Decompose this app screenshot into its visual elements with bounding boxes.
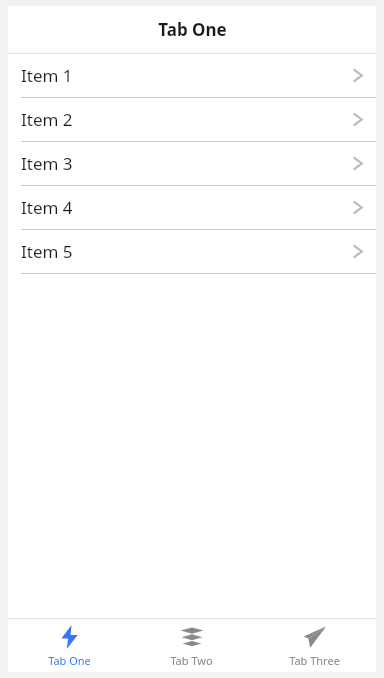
staticText: Item 1 [21, 64, 73, 87]
staticText: Item 2 [21, 108, 73, 131]
button[interactable]: Item 1 [8, 54, 376, 98]
staticText: Item 3 [21, 152, 73, 175]
button[interactable]: Tab Three [253, 619, 376, 672]
button[interactable]: Item 2 [8, 98, 376, 142]
staticText: Tab One [48, 653, 91, 668]
button[interactable]: Tab Two [130, 619, 253, 672]
staticText: Tab Three [289, 653, 340, 668]
staticText: Item 4 [21, 196, 73, 219]
button[interactable]: Item 3 [8, 142, 376, 186]
button[interactable]: Tab One [8, 619, 130, 672]
staticText: Tab Two [170, 653, 213, 668]
button[interactable]: Item 4 [8, 186, 376, 230]
button[interactable]: Item 5 [8, 230, 376, 274]
staticText: Item 5 [21, 240, 73, 263]
staticText: Tab One [158, 18, 227, 41]
